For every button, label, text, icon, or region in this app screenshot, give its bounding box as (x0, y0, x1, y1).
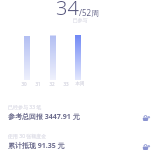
staticText: 已参与 (0, 17, 160, 23)
staticText: 已经参与 33 笔 (8, 104, 42, 111)
staticText: 本周 (73, 81, 87, 87)
staticText: 累计抵现 91.35 元 (8, 141, 65, 151)
staticText: 使用 30 张额度金 (8, 133, 47, 140)
staticText: 参考总回报 3447.91 元 (8, 112, 80, 122)
other: 详情 (142, 113, 151, 122)
staticText: 31 (31, 81, 45, 87)
other: 详情 (142, 142, 151, 151)
staticText: /52周 (79, 7, 100, 18)
button[interactable]: 已经参与 33 笔 (0, 101, 160, 128)
staticText: 34 (56, 0, 79, 21)
staticText: 30 (17, 81, 31, 87)
staticText: 33 (59, 81, 73, 87)
button[interactable]: 使用 30 张额度金 (0, 130, 160, 157)
staticText: 32 (45, 81, 59, 87)
